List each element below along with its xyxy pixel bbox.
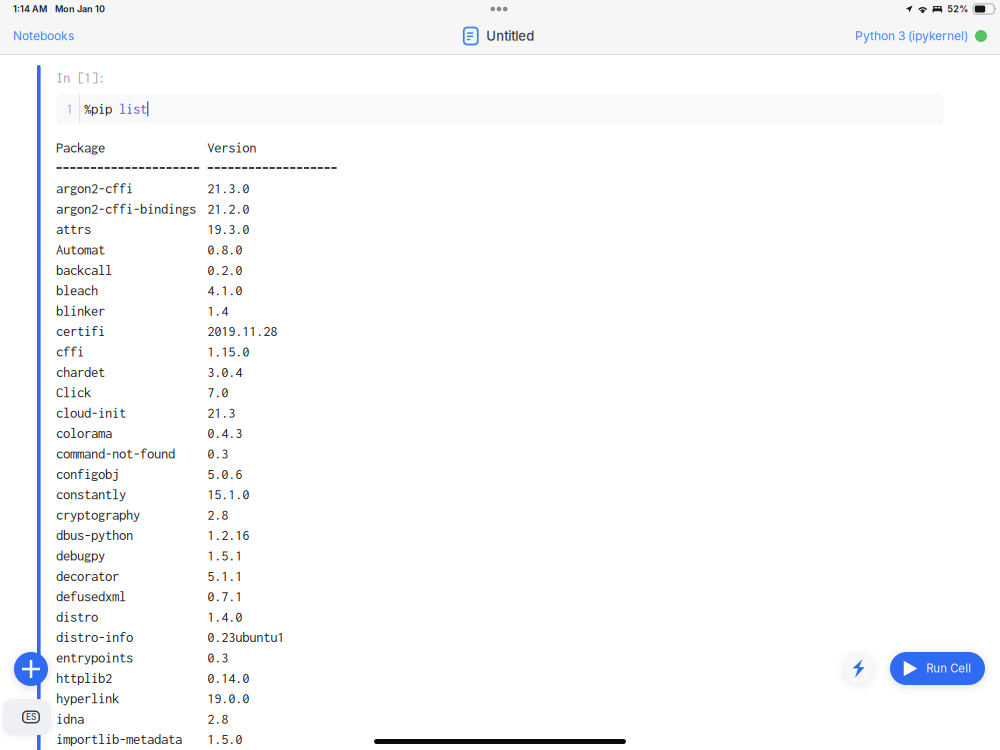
staticText: 0.8.0: [207, 242, 242, 257]
staticText: 5.0.6: [207, 466, 242, 482]
staticText: 1.2.16: [207, 527, 249, 543]
staticText: cryptography: [56, 507, 140, 522]
staticText: list: [119, 101, 147, 117]
button[interactable]: Add cell: [14, 652, 48, 686]
staticText: configobj: [56, 466, 119, 482]
staticText: attrs: [56, 221, 91, 237]
staticText: %pip: [84, 101, 119, 117]
staticText: Click: [56, 385, 91, 400]
staticText: argon2-cffi-bindings: [56, 201, 196, 216]
staticText: 1.4.0: [207, 609, 242, 624]
staticText: 0.3: [207, 446, 228, 461]
staticText: 5.1.1: [207, 568, 242, 584]
staticText: ES: [26, 712, 36, 722]
staticText: 21.3: [207, 405, 235, 420]
staticText: entrypoints: [56, 650, 133, 665]
staticText: 19.3.0: [207, 221, 249, 237]
staticText: blinker: [56, 303, 105, 318]
staticText: 1:14 AM: [13, 3, 47, 14]
staticText: 2019.11.28: [207, 323, 277, 339]
staticText: 52%: [947, 3, 968, 14]
staticText: hyperlink: [56, 691, 119, 706]
staticText: 15.1.0: [207, 487, 249, 502]
staticText: defusedxml: [56, 589, 126, 604]
staticText: constantly: [56, 487, 126, 502]
staticText: 0.3: [207, 650, 228, 665]
staticText: 19.0.0: [207, 691, 249, 706]
staticText: 1.5.0: [207, 731, 242, 747]
staticText: Notebooks: [13, 29, 74, 43]
staticText: Run Cell: [926, 662, 971, 675]
staticText: 1.15.0: [207, 344, 249, 359]
staticText: Untitled: [486, 28, 534, 44]
staticText: 0.23ubuntu1: [207, 629, 284, 645]
staticText: Python 3 (ipykernel): [855, 29, 968, 43]
staticText: cloud-init: [56, 405, 126, 420]
staticText: 21.2.0: [207, 201, 249, 216]
staticText: 3.0.4: [207, 364, 242, 380]
staticText: dbus-python: [56, 527, 133, 543]
staticText: backcall: [56, 262, 112, 278]
staticText: Package: [56, 140, 105, 155]
staticText: Mon Jan 10: [55, 3, 105, 14]
staticText: 0.14.0: [207, 670, 249, 686]
staticText: httplib2: [56, 670, 112, 686]
staticText: 0.2.0: [207, 262, 242, 278]
staticText: In [1]:: [56, 70, 105, 85]
staticText: decorator: [56, 568, 119, 584]
staticText: 1.5.1: [207, 548, 242, 563]
staticText: command-not-found: [56, 446, 175, 461]
staticText: 4.1.0: [207, 283, 242, 298]
staticText: 21.3.0: [207, 181, 249, 196]
staticText: 1.4: [207, 303, 228, 318]
button[interactable]: Run all cells: [843, 653, 874, 684]
staticText: Version: [207, 140, 256, 155]
staticText: 0.4.3: [207, 425, 242, 441]
staticText: argon2-cffi: [56, 181, 133, 196]
staticText: idna: [56, 711, 84, 726]
staticText: 2.8: [207, 711, 228, 726]
button[interactable]: Keyboard language: ES: [3, 699, 51, 735]
staticText: 7.0: [207, 385, 228, 400]
staticText: 0.7.1: [207, 589, 242, 604]
staticText: certifi: [56, 323, 105, 339]
button[interactable]: Python 3 (ipykernel): [855, 23, 987, 49]
staticText: colorama: [56, 425, 112, 441]
button[interactable]: Notebooks: [10, 23, 77, 49]
button[interactable]: Untitled: [465, 23, 535, 48]
staticText: cffi: [56, 344, 84, 359]
staticText: importlib-metadata: [56, 731, 182, 747]
staticText: chardet: [56, 364, 105, 380]
staticText: Automat: [56, 242, 105, 257]
staticText: debugpy: [56, 548, 105, 563]
button[interactable]: Run Cell: [890, 652, 985, 685]
staticText: distro: [56, 609, 98, 624]
staticText: bleach: [56, 283, 98, 298]
staticText: distro-info: [56, 629, 133, 645]
staticText: 2.8: [207, 507, 228, 522]
staticText: 1: [66, 101, 73, 117]
